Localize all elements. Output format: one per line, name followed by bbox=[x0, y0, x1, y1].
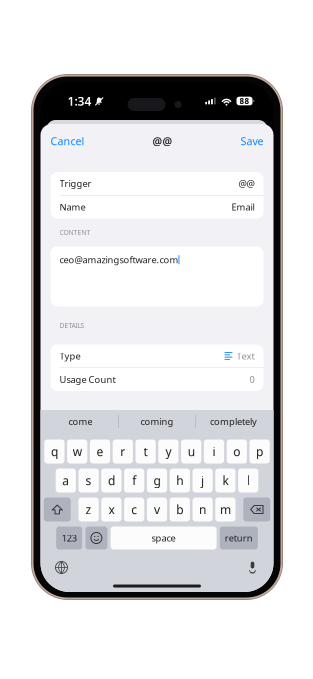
staticText: v bbox=[154, 501, 160, 517]
button[interactable]: a bbox=[56, 468, 76, 492]
staticText: r bbox=[120, 443, 125, 459]
staticText: Name bbox=[59, 201, 85, 213]
button[interactable]: j bbox=[192, 468, 213, 492]
button[interactable]: d bbox=[101, 468, 121, 492]
button[interactable]: k bbox=[215, 468, 235, 492]
staticText: Text bbox=[236, 350, 254, 362]
button[interactable]: space bbox=[111, 526, 217, 549]
staticText: 1:34 bbox=[67, 93, 91, 109]
button[interactable]: Save bbox=[230, 126, 273, 156]
staticText: x bbox=[108, 501, 114, 517]
staticText: b bbox=[176, 501, 183, 517]
staticText: space bbox=[152, 532, 176, 544]
staticText: completely bbox=[210, 415, 257, 428]
staticText: c bbox=[131, 501, 137, 517]
button[interactable]: o bbox=[227, 439, 247, 463]
staticText: 123 bbox=[62, 532, 77, 544]
staticText: i bbox=[212, 443, 215, 459]
button[interactable]: h bbox=[170, 468, 190, 492]
button[interactable]: return bbox=[220, 526, 258, 549]
button[interactable]: f bbox=[124, 468, 144, 492]
button[interactable]: n bbox=[192, 497, 213, 521]
button[interactable]: Type bbox=[50, 344, 263, 367]
staticText: Cancel bbox=[50, 134, 84, 148]
button[interactable]: coming bbox=[119, 408, 195, 434]
staticText: k bbox=[222, 472, 228, 488]
staticText: u bbox=[188, 443, 195, 459]
button[interactable]: Dictate bbox=[243, 558, 261, 576]
staticText: DETAILS bbox=[59, 321, 84, 330]
staticText: Email bbox=[231, 201, 254, 213]
button[interactable]: p bbox=[249, 439, 270, 463]
staticText: 0 bbox=[249, 373, 254, 386]
staticText: CONTENT bbox=[59, 228, 90, 237]
staticText: 88 bbox=[239, 96, 249, 106]
staticText: ceo@amazingsoftware.com bbox=[59, 253, 178, 266]
staticText: w bbox=[73, 443, 82, 459]
button[interactable]: l bbox=[238, 468, 258, 492]
button[interactable]: z bbox=[78, 497, 99, 521]
staticText: t bbox=[144, 443, 148, 459]
button[interactable]: Cancel bbox=[40, 126, 94, 156]
button[interactable]: Switch keyboard bbox=[52, 558, 70, 576]
button[interactable]: r bbox=[113, 439, 133, 463]
button[interactable]: Name bbox=[50, 195, 263, 218]
staticText: Save bbox=[240, 134, 263, 148]
staticText: s bbox=[86, 472, 92, 488]
button[interactable]: v bbox=[147, 497, 167, 521]
staticText: m bbox=[220, 501, 231, 517]
button[interactable]: come bbox=[42, 408, 118, 434]
staticText: n bbox=[199, 501, 206, 517]
button[interactable]: b bbox=[170, 497, 190, 521]
staticText: p bbox=[256, 443, 263, 459]
staticText: come bbox=[68, 415, 92, 428]
staticText: z bbox=[86, 501, 92, 517]
staticText: d bbox=[108, 472, 115, 488]
staticText: j bbox=[201, 472, 204, 488]
button[interactable]: x bbox=[101, 497, 121, 521]
button[interactable]: q bbox=[44, 439, 64, 463]
staticText: f bbox=[132, 472, 136, 488]
button[interactable]: completely bbox=[196, 408, 272, 434]
staticText: @@ bbox=[152, 134, 172, 148]
button[interactable]: Trigger bbox=[50, 172, 263, 195]
button[interactable]: 123 bbox=[56, 526, 82, 549]
staticText: o bbox=[233, 443, 240, 459]
button[interactable]: u bbox=[181, 439, 201, 463]
staticText: a bbox=[62, 472, 69, 488]
staticText: Type bbox=[59, 350, 80, 362]
button[interactable]: t bbox=[135, 439, 156, 463]
staticText: @@ bbox=[238, 177, 254, 190]
staticText: l bbox=[247, 472, 250, 488]
staticText: g bbox=[153, 472, 160, 488]
button[interactable]: i bbox=[204, 439, 224, 463]
button[interactable]: e bbox=[90, 439, 110, 463]
button[interactable]: g bbox=[147, 468, 167, 492]
button[interactable]: Shift bbox=[44, 497, 71, 521]
staticText: coming bbox=[140, 415, 173, 428]
button[interactable]: w bbox=[67, 439, 87, 463]
button[interactable]: Emoji bbox=[85, 526, 107, 549]
button[interactable]: s bbox=[78, 468, 99, 492]
staticText: e bbox=[96, 443, 103, 459]
staticText: return bbox=[225, 532, 253, 544]
staticText: q bbox=[51, 443, 58, 459]
staticText: Usage Count bbox=[59, 373, 115, 386]
button[interactable]: Usage Count bbox=[50, 368, 263, 391]
button[interactable]: Delete bbox=[243, 497, 270, 521]
staticText: h bbox=[176, 472, 183, 488]
button[interactable]: c bbox=[124, 497, 144, 521]
staticText: y bbox=[165, 443, 171, 459]
button[interactable]: y bbox=[158, 439, 178, 463]
button[interactable]: m bbox=[215, 497, 235, 521]
staticText: Trigger bbox=[59, 177, 91, 190]
